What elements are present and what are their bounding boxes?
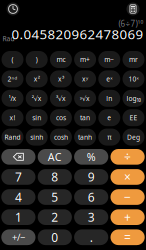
staticText: ÷ [124, 149, 131, 165]
button[interactable]: EE [122, 109, 144, 126]
staticText: Deg [127, 133, 140, 142]
button[interactable]: − [110, 189, 145, 205]
staticText: mc [56, 55, 65, 64]
button[interactable]: ( [1, 51, 23, 68]
staticText: tan [80, 113, 90, 122]
button[interactable]: 6 [74, 189, 108, 205]
staticText: 10ˣ [128, 74, 138, 83]
button[interactable]: Recents [0, 0, 26, 18]
staticText: π [107, 133, 111, 142]
staticText: tanh [78, 133, 92, 142]
staticText: sin [32, 113, 41, 122]
button[interactable]: % [74, 149, 108, 165]
button[interactable]: ÷ [110, 149, 145, 165]
staticText: e [107, 113, 111, 122]
button[interactable]: Calculator [120, 0, 146, 18]
staticText: +/− [12, 231, 25, 243]
button[interactable]: ³√x [50, 90, 72, 107]
staticText: x! [9, 113, 15, 122]
staticText: cos [56, 113, 66, 122]
button[interactable]: Rand [1, 129, 23, 146]
staticText: ʸ√x [80, 94, 90, 103]
button[interactable]: ) [26, 51, 48, 68]
staticText: AC [48, 150, 62, 164]
button[interactable]: 5 [38, 189, 72, 205]
button[interactable]: e [98, 109, 120, 126]
staticText: m+ [80, 55, 90, 64]
staticText: 2ⁿᵈ [7, 74, 17, 83]
button[interactable]: x² [26, 70, 48, 87]
button[interactable]: ²√x [26, 90, 48, 107]
button[interactable]: tan [74, 109, 96, 126]
staticText: xʸ [82, 74, 88, 83]
button[interactable]: sin [26, 109, 48, 126]
button[interactable]: 2ⁿᵈ [1, 70, 23, 87]
button[interactable]: sinh [26, 129, 48, 146]
button[interactable]: 10ˣ [122, 70, 144, 87]
staticText: Rad [2, 34, 14, 43]
staticText: 2 [51, 209, 58, 225]
button[interactable]: x³ [50, 70, 72, 87]
button[interactable]: AC [38, 149, 72, 165]
button[interactable]: ¹/x [1, 90, 23, 107]
staticText: = [124, 229, 131, 245]
button[interactable]: 1 [1, 209, 35, 225]
staticText: 0 [51, 229, 58, 245]
staticText: m− [104, 55, 114, 64]
button[interactable]: 9 [74, 169, 108, 185]
staticText: 8 [51, 169, 58, 185]
staticText: x³ [58, 74, 64, 83]
button[interactable]: ln [98, 90, 120, 107]
staticText: mr [129, 55, 138, 64]
button[interactable]: 4 [1, 189, 35, 205]
staticText: log₁₀ [126, 94, 140, 103]
staticText: Rand [4, 133, 20, 142]
staticText: 0.045820962478069 [11, 25, 143, 43]
staticText: 9 [88, 169, 95, 185]
button[interactable]: mr [122, 51, 144, 68]
button[interactable]: ʸ√x [74, 90, 96, 107]
staticText: 4 [15, 189, 22, 205]
button[interactable]: . [74, 229, 108, 245]
staticText: 6 [88, 189, 95, 205]
button[interactable]: tanh [74, 129, 96, 146]
button[interactable]: xʸ [74, 70, 96, 87]
staticText: 5 [51, 189, 58, 205]
staticText: (6÷7)¹⁰ [118, 18, 143, 29]
staticText: cosh [54, 133, 68, 142]
staticText: 1 [15, 209, 22, 225]
staticText: ¹/x [8, 94, 16, 103]
staticText: 3 [88, 209, 95, 225]
button[interactable]: 8 [38, 169, 72, 185]
button[interactable]: +/− [1, 229, 35, 245]
staticText: + [124, 209, 131, 225]
staticText: ²√x [32, 94, 42, 103]
button[interactable]: 3 [74, 209, 108, 225]
button[interactable]: cos [50, 109, 72, 126]
button[interactable]: 0 [38, 229, 72, 245]
button[interactable]: cosh [50, 129, 72, 146]
staticText: × [124, 169, 131, 185]
button[interactable]: log₁₀ [122, 90, 144, 107]
button[interactable]: x! [1, 109, 23, 126]
staticText: ) [36, 55, 38, 64]
button[interactable]: m− [98, 51, 120, 68]
staticText: EE [129, 113, 137, 122]
staticText: ³√x [56, 94, 66, 103]
button[interactable]: 7 [1, 169, 35, 185]
button[interactable]: mc [50, 51, 72, 68]
button[interactable]: π [98, 129, 120, 146]
button[interactable]: + [110, 209, 145, 225]
staticText: x² [34, 74, 40, 83]
staticText: % [87, 150, 96, 164]
staticText: 7 [15, 169, 22, 185]
button[interactable]: = [110, 229, 145, 245]
staticText: . [90, 229, 93, 245]
button[interactable]: eˣ [98, 70, 120, 87]
button[interactable]: Delete [1, 149, 35, 165]
button[interactable]: m+ [74, 51, 96, 68]
button[interactable]: 2 [38, 209, 72, 225]
staticText: eˣ [106, 74, 112, 83]
button[interactable]: Deg [122, 129, 144, 146]
button[interactable]: × [110, 169, 145, 185]
